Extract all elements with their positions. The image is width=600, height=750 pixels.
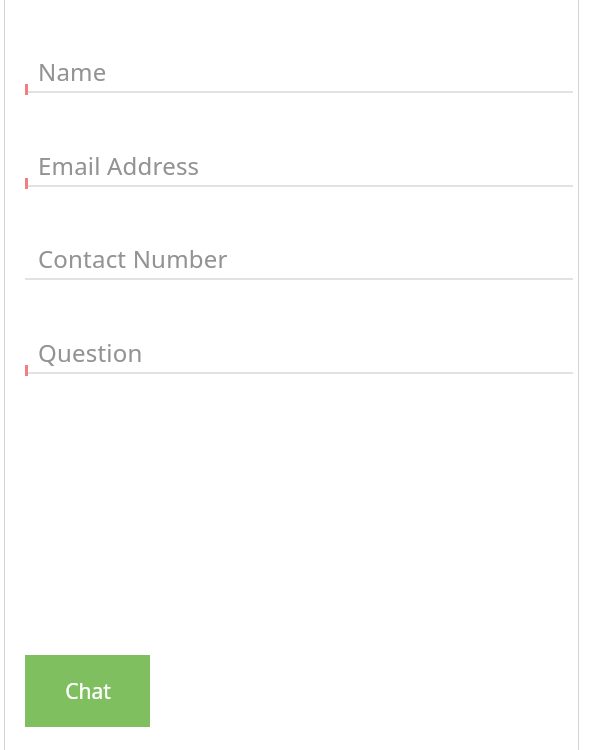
button[interactable] — [25, 45, 573, 93]
staticText: Chat — [65, 677, 111, 706]
staticText: Contact Number — [38, 242, 228, 275]
staticText: Question — [38, 336, 143, 369]
button[interactable]: Chat — [25, 655, 150, 727]
button[interactable] — [25, 232, 573, 280]
button[interactable] — [25, 139, 573, 187]
staticText: Name — [38, 55, 107, 88]
button[interactable] — [25, 326, 573, 374]
staticText: Email Address — [38, 149, 200, 182]
